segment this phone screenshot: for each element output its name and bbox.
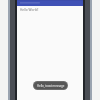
staticText: Hello, toast message [37,84,65,88]
button[interactable] [17,0,83,6]
staticText: Hello World! [20,8,39,12]
button[interactable]: Hello, toast message [34,82,67,89]
